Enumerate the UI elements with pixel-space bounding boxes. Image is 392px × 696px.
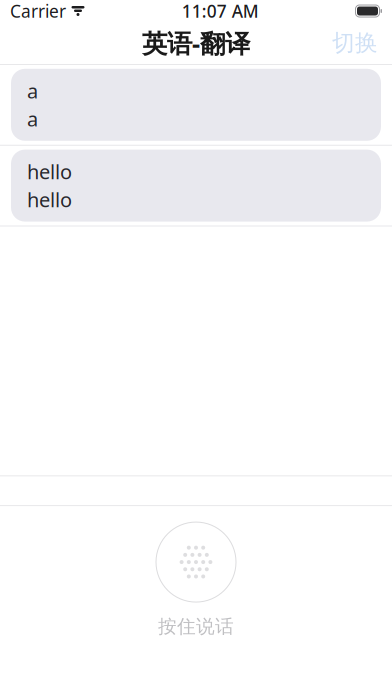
staticText: Carrier — [10, 0, 66, 22]
staticText: hello — [27, 186, 72, 213]
button[interactable]: 切换 — [318, 21, 392, 65]
staticText: 切换 — [332, 29, 378, 57]
button[interactable]: hello — [0, 146, 392, 226]
button[interactable]: 按住说话 — [156, 522, 236, 638]
staticText: 按住说话 — [158, 615, 234, 638]
staticText: a — [27, 77, 38, 104]
button[interactable]: a — [0, 65, 392, 145]
staticText: a — [27, 105, 38, 132]
staticText: hello — [27, 158, 72, 185]
staticText: 英语-翻译 — [142, 26, 250, 60]
staticText: 11:07 AM — [182, 0, 259, 22]
